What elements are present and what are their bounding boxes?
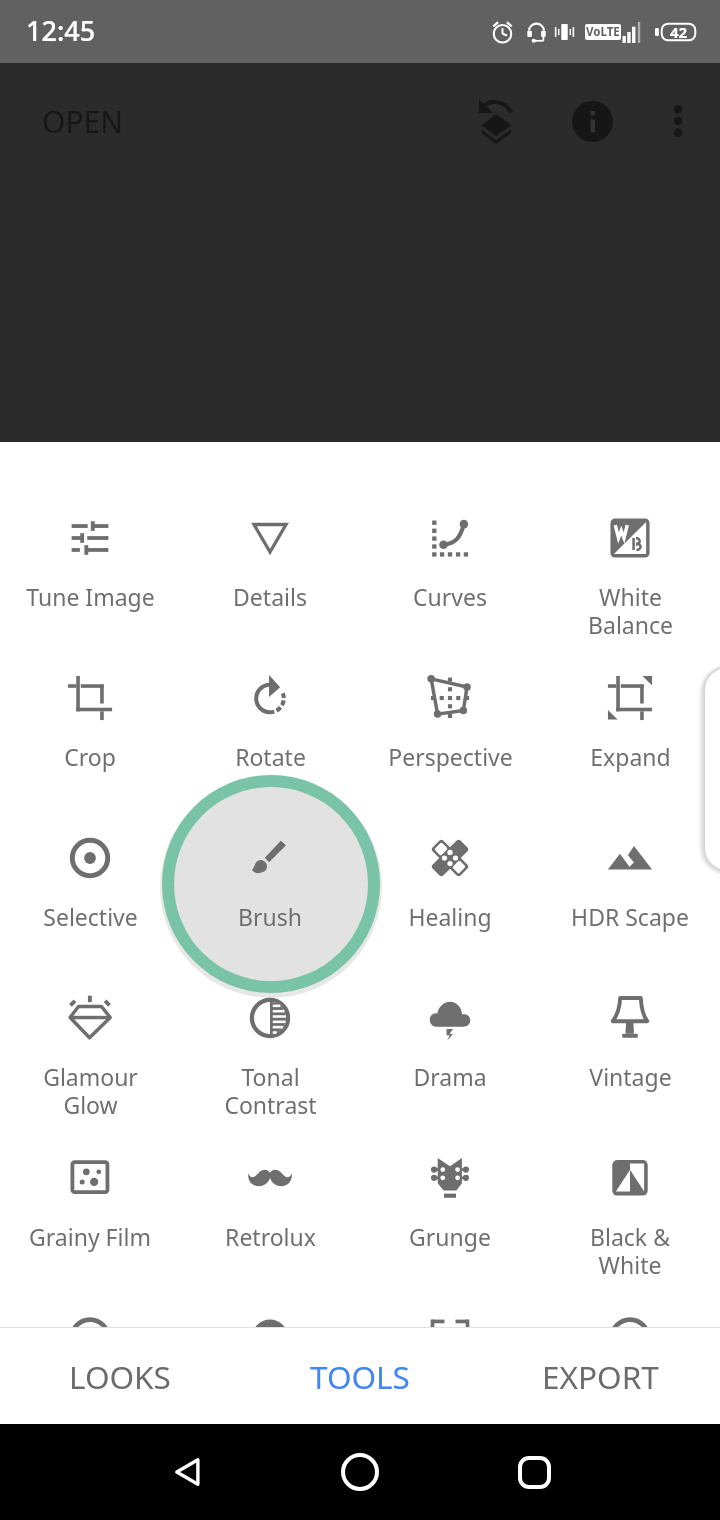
staticText: 42	[670, 22, 688, 42]
staticText: Healing	[408, 901, 492, 932]
staticText: VoLTE	[586, 24, 620, 40]
button[interactable]: Lens Blur	[540, 1242, 720, 1412]
button[interactable]: Grainy Film	[0, 1082, 180, 1252]
button[interactable]: Portrait	[180, 1242, 360, 1412]
staticText: Curves	[413, 581, 487, 612]
button[interactable]: Curves	[360, 442, 540, 612]
staticText: TOOLS	[310, 1355, 410, 1398]
button[interactable]: Noir	[0, 1242, 180, 1412]
button[interactable]: Selective	[0, 762, 180, 932]
button[interactable]: Glamour Glow	[0, 922, 180, 1121]
button[interactable]: Drama	[360, 922, 540, 1092]
button[interactable]: Home	[300, 1424, 420, 1520]
staticText: Brush	[238, 901, 302, 932]
button[interactable]: Rotate	[180, 602, 360, 772]
staticText: Grainy Film	[29, 1221, 151, 1252]
button[interactable]: Perspective	[360, 602, 540, 772]
button[interactable]: Retrolux	[180, 1082, 360, 1252]
staticText: 12:45	[26, 12, 96, 49]
button[interactable]: Details	[180, 442, 360, 612]
staticText: Crop	[64, 741, 116, 772]
staticText: Expand	[590, 741, 671, 772]
staticText: EXPORT	[542, 1355, 659, 1398]
staticText: Glamour Glow	[43, 1061, 138, 1121]
button[interactable]: Info	[548, 63, 636, 179]
staticText: Tune Image	[26, 581, 155, 612]
button[interactable]: LOOKS	[0, 1328, 240, 1424]
staticText: Head Pose	[393, 1381, 508, 1412]
button[interactable]: Revert	[447, 63, 543, 179]
staticText: Tonal Contrast	[224, 1061, 317, 1121]
staticText: Selective	[43, 901, 138, 932]
staticText: Vintage	[589, 1061, 672, 1092]
button[interactable]: Healing	[360, 762, 540, 932]
button[interactable]: EXPORT	[480, 1328, 720, 1424]
staticText: Rotate	[235, 741, 306, 772]
button[interactable]: Crop	[0, 602, 180, 772]
button[interactable]: Vintage	[540, 922, 720, 1092]
staticText: Black & White	[590, 1221, 670, 1281]
button[interactable]: Tune Image	[0, 442, 180, 612]
button[interactable]: Expand	[540, 602, 720, 772]
button[interactable]: Head Pose	[360, 1242, 540, 1412]
staticText: White Balance	[588, 581, 673, 641]
button[interactable]: White Balance	[540, 442, 720, 641]
button[interactable]: Recents	[474, 1424, 594, 1520]
staticText: Lens Blur	[580, 1381, 681, 1412]
button[interactable]: Black & White	[540, 1082, 720, 1281]
staticText: Grunge	[409, 1221, 491, 1252]
staticText: Retrolux	[225, 1221, 316, 1252]
staticText: Details	[233, 581, 307, 612]
button[interactable]: OPEN	[42, 101, 124, 142]
staticText: LOOKS	[69, 1355, 171, 1398]
button[interactable]: Brush	[180, 762, 360, 932]
button[interactable]: Tonal Contrast	[180, 922, 360, 1121]
staticText: Perspective	[388, 741, 513, 772]
staticText: Drama	[413, 1061, 487, 1092]
button[interactable]: TOOLS	[240, 1328, 480, 1424]
staticText: HDR Scape	[571, 901, 689, 932]
staticText: Noir	[67, 1381, 114, 1412]
button[interactable]: HDR Scape	[540, 762, 720, 932]
button[interactable]: Grunge	[360, 1082, 540, 1252]
button[interactable]: Back	[127, 1424, 247, 1520]
